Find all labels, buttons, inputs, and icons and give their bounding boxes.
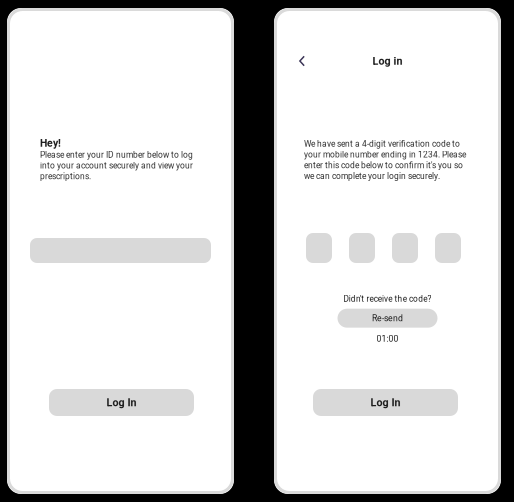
button[interactable]: Verification digit: [306, 233, 332, 263]
button[interactable]: Log In: [313, 389, 458, 416]
button[interactable]: Re-send: [337, 309, 437, 328]
staticText: Log In: [370, 396, 400, 409]
staticText: Please enter your ID number below to log…: [40, 150, 193, 181]
button[interactable]: ID number: [30, 238, 211, 263]
button[interactable]: Verification digit: [349, 233, 375, 263]
button[interactable]: Log In: [49, 389, 194, 416]
staticText: We have sent a 4-digit verification code…: [304, 139, 466, 181]
staticText: Log In: [106, 396, 136, 409]
staticText: Log in: [372, 55, 402, 67]
button[interactable]: Verification digit: [392, 233, 418, 263]
staticText: 01:00: [376, 334, 398, 344]
staticText: Hey!: [40, 137, 61, 149]
button[interactable]: Verification digit: [435, 233, 461, 263]
staticText: Didn't receive the code?: [344, 294, 431, 304]
button[interactable]: Back: [292, 51, 312, 71]
staticText: Re-send: [372, 313, 403, 323]
